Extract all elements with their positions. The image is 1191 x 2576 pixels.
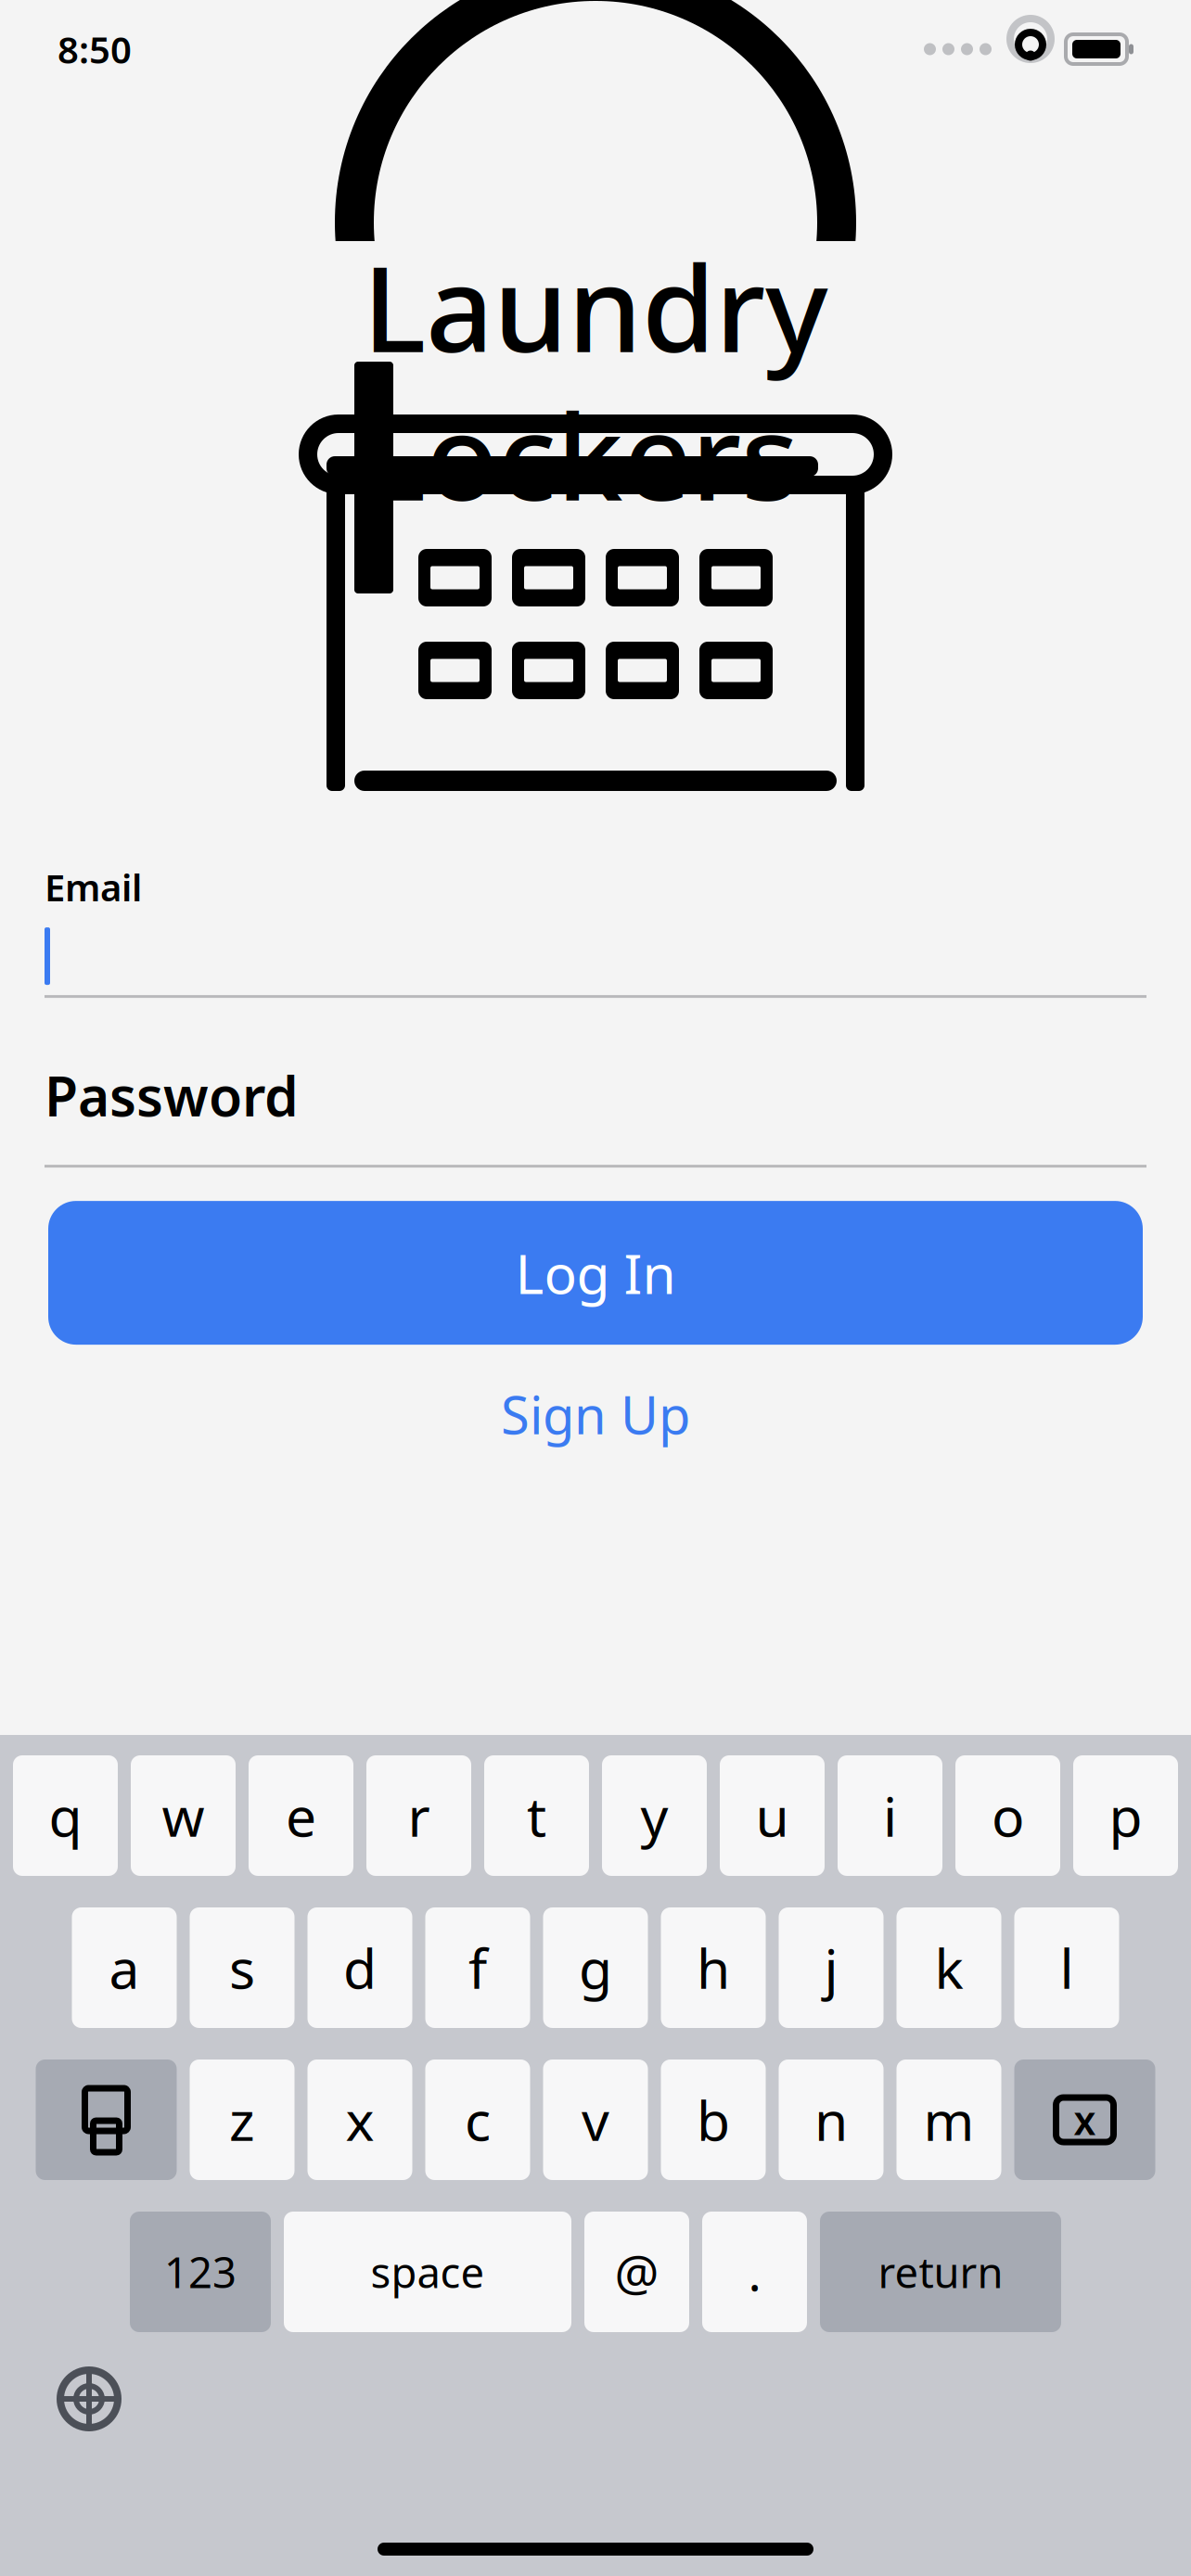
button[interactable]: m — [896, 2060, 1001, 2180]
button[interactable]: h — [661, 1907, 766, 2028]
button[interactable]: z — [190, 2060, 295, 2180]
staticText: 123 — [164, 2244, 237, 2300]
button[interactable]: t — [484, 1755, 589, 1876]
staticText: a — [109, 1932, 140, 2004]
staticText: o — [992, 1779, 1024, 1852]
staticText: Laundry — [363, 227, 828, 385]
staticText: j — [824, 1932, 838, 2004]
button[interactable]: v — [543, 2060, 648, 2180]
button[interactable] — [45, 912, 1146, 995]
button[interactable]: e — [249, 1755, 353, 1876]
staticText: f — [468, 1932, 487, 2004]
staticText: space — [371, 2244, 485, 2300]
button[interactable]: n — [779, 2060, 884, 2180]
staticText: z — [229, 2084, 255, 2156]
button[interactable]: w — [131, 1755, 236, 1876]
button[interactable]: o — [955, 1755, 1060, 1876]
button[interactable]: j — [779, 1907, 884, 2028]
button[interactable]: @ — [584, 2212, 689, 2332]
staticText: v — [582, 2084, 609, 2156]
button[interactable]: space — [284, 2212, 571, 2332]
button[interactable]: a — [72, 1907, 177, 2028]
button[interactable]: i — [838, 1755, 942, 1876]
button[interactable]: s — [190, 1907, 295, 2028]
staticText: 8:50 — [58, 24, 132, 74]
button[interactable]: return — [820, 2212, 1061, 2332]
staticText: k — [935, 1932, 963, 2004]
staticText: p — [1109, 1779, 1142, 1852]
button[interactable]: g — [543, 1907, 648, 2028]
button[interactable]: p — [1073, 1755, 1178, 1876]
button[interactable]: Delete — [1014, 2060, 1155, 2180]
staticText: g — [579, 1932, 612, 2004]
button[interactable]: c — [425, 2060, 530, 2180]
button[interactable]: k — [896, 1907, 1001, 2028]
button[interactable]: q — [13, 1755, 118, 1876]
staticText: b — [697, 2084, 730, 2156]
staticText: l — [1060, 1932, 1074, 2004]
staticText: Password — [45, 1059, 299, 1131]
button[interactable]: b — [661, 2060, 766, 2180]
staticText: c — [465, 2084, 491, 2156]
staticText: r — [408, 1779, 430, 1852]
staticText: e — [286, 1779, 316, 1852]
staticText: m — [923, 2084, 974, 2156]
staticText: x — [346, 2084, 374, 2156]
staticText: y — [640, 1779, 668, 1852]
staticText: n — [814, 2084, 848, 2156]
button[interactable]: 123 — [130, 2212, 271, 2332]
button[interactable]: Password — [45, 1059, 1146, 1131]
button[interactable]: Next keyboard — [45, 2354, 134, 2443]
staticText: w — [162, 1779, 205, 1852]
button[interactable]: l — [1014, 1907, 1119, 2028]
staticText: x — [1074, 2094, 1096, 2146]
button[interactable]: Log In — [48, 1201, 1143, 1345]
button[interactable]: . — [702, 2212, 807, 2332]
staticText: h — [697, 1932, 730, 2004]
staticText: Log In — [515, 1237, 676, 1309]
staticText: d — [343, 1932, 377, 2004]
staticText: u — [756, 1779, 789, 1852]
staticText: q — [49, 1779, 82, 1852]
staticText: @ — [615, 2239, 659, 2305]
button[interactable]: x — [307, 2060, 412, 2180]
staticText: t — [527, 1779, 546, 1852]
button[interactable]: Sign Up — [0, 1382, 1191, 1447]
button[interactable]: u — [720, 1755, 825, 1876]
staticText: i — [883, 1779, 897, 1852]
button[interactable]: r — [366, 1755, 471, 1876]
button[interactable]: Shift — [36, 2060, 177, 2180]
staticText: . — [748, 2239, 761, 2305]
button[interactable]: f — [425, 1907, 530, 2028]
staticText: Lockers — [363, 376, 799, 533]
button[interactable]: y — [602, 1755, 707, 1876]
button[interactable]: d — [307, 1907, 412, 2028]
staticText: s — [229, 1932, 255, 2004]
staticText: return — [878, 2244, 1003, 2300]
staticText: Email — [45, 862, 142, 912]
staticText: Sign Up — [501, 1380, 690, 1449]
